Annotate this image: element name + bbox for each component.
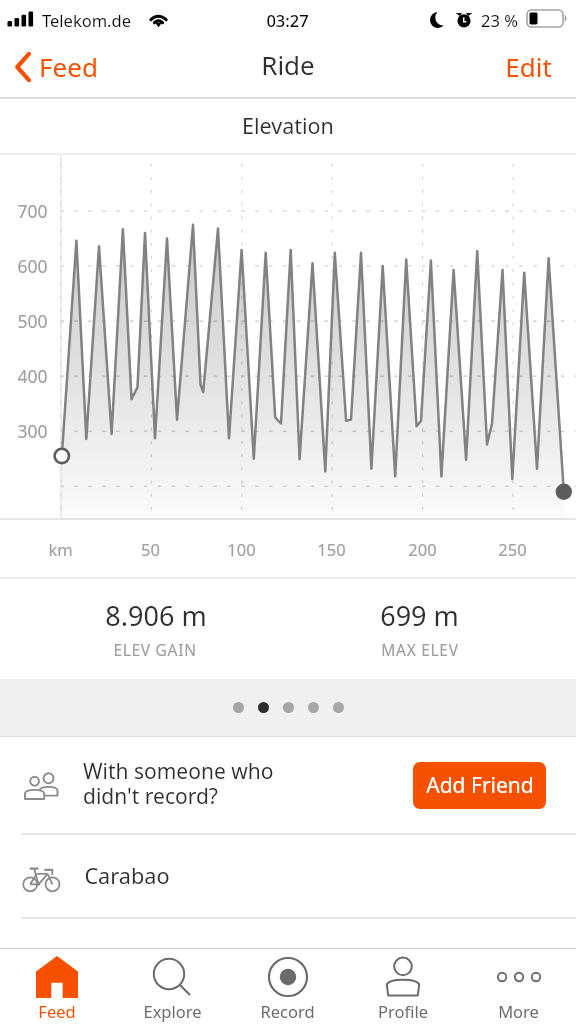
staticText: 150 bbox=[317, 538, 346, 560]
staticText: MAX ELEV bbox=[381, 639, 459, 660]
staticText: 500 bbox=[17, 309, 48, 333]
button[interactable] bbox=[462, 949, 576, 1024]
staticText: Ride bbox=[261, 47, 315, 82]
staticText: With someone who didn't record? bbox=[83, 757, 274, 810]
staticText: 400 bbox=[17, 364, 48, 388]
staticText: 50 bbox=[141, 538, 160, 560]
button[interactable] bbox=[0, 949, 115, 1024]
staticText: Elevation bbox=[242, 111, 334, 140]
staticText: 100 bbox=[227, 538, 256, 560]
button[interactable] bbox=[346, 949, 461, 1024]
staticText: 300 bbox=[17, 419, 48, 443]
staticText: Telekom.de bbox=[42, 9, 131, 31]
button[interactable] bbox=[0, 738, 576, 833]
button[interactable]: Feed bbox=[15, 43, 119, 89]
staticText: 03:27 bbox=[266, 9, 309, 31]
staticText: 8.906 m bbox=[105, 597, 207, 634]
staticText: 23 % bbox=[481, 9, 518, 31]
staticText: 250 bbox=[498, 538, 527, 560]
staticText: Feed bbox=[39, 49, 98, 84]
button[interactable]: Add Friend bbox=[413, 762, 546, 809]
button[interactable]: Edit bbox=[486, 43, 576, 89]
button[interactable] bbox=[231, 949, 346, 1024]
staticText: Add Friend bbox=[426, 771, 534, 800]
staticText: More bbox=[498, 1000, 539, 1022]
staticText: 200 bbox=[408, 538, 437, 560]
staticText: km bbox=[48, 538, 73, 560]
button[interactable] bbox=[0, 834, 576, 918]
staticText: Carabao bbox=[84, 861, 170, 891]
staticText: Profile bbox=[378, 1000, 428, 1022]
staticText: ELEV GAIN bbox=[113, 639, 197, 660]
staticText: Record bbox=[260, 1000, 315, 1022]
button[interactable] bbox=[115, 949, 230, 1024]
staticText: Explore bbox=[143, 1000, 202, 1022]
staticText: Edit bbox=[505, 49, 552, 84]
staticText: 699 m bbox=[380, 597, 459, 634]
staticText: Feed bbox=[38, 1000, 76, 1022]
staticText: 700 bbox=[17, 199, 48, 223]
staticText: 600 bbox=[17, 254, 48, 278]
